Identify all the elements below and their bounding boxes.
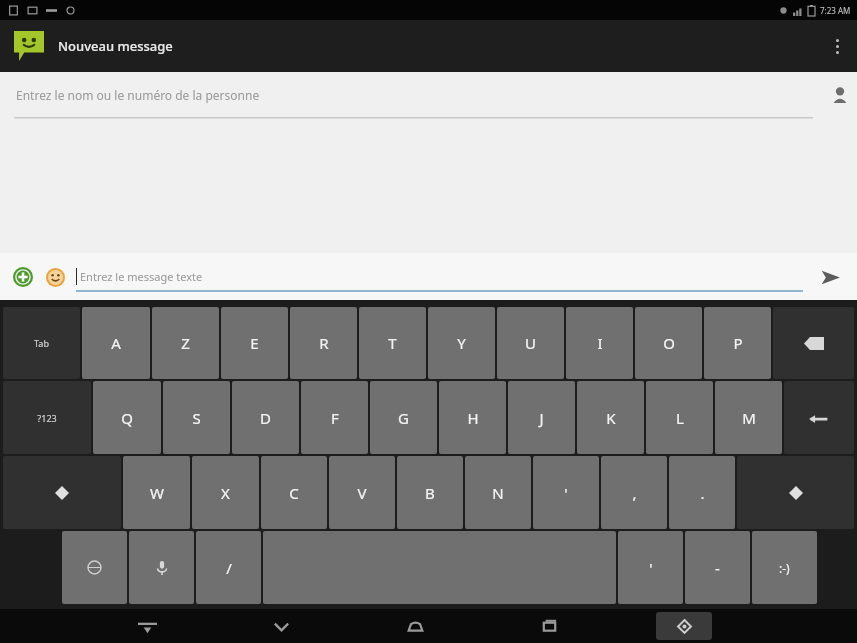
- staticText: H: [467, 408, 479, 428]
- button[interactable]: ': [533, 456, 599, 529]
- button[interactable]: Nouveau message: [14, 31, 183, 61]
- button[interactable]: -: [685, 531, 750, 604]
- staticText: P: [733, 333, 743, 353]
- button[interactable]: shift: [737, 456, 854, 529]
- button[interactable]: E: [221, 307, 288, 379]
- staticText: T: [388, 333, 397, 353]
- staticText: W: [150, 483, 164, 503]
- button[interactable]: F: [301, 381, 368, 454]
- button[interactable]: J: [508, 381, 575, 454]
- staticText: X: [221, 483, 230, 503]
- staticText: 7:23 AM: [820, 5, 851, 16]
- button[interactable]: More options: [817, 20, 857, 72]
- staticText: J: [539, 408, 544, 428]
- staticText: ': [564, 483, 568, 503]
- button[interactable]: Send: [813, 260, 847, 294]
- staticText: L: [676, 408, 684, 428]
- staticText: ': [649, 558, 653, 578]
- button[interactable]: T: [359, 307, 426, 379]
- button[interactable]: S: [163, 381, 230, 454]
- staticText: .: [700, 483, 705, 503]
- staticText: C: [289, 483, 299, 503]
- button[interactable]: globe: [62, 531, 127, 604]
- staticText: I: [597, 333, 603, 353]
- button[interactable]: C: [261, 456, 327, 529]
- button[interactable]: M: [715, 381, 782, 454]
- staticText: -: [715, 558, 720, 578]
- button[interactable]: Recent apps: [532, 609, 566, 643]
- staticText: /: [226, 558, 232, 578]
- staticText: B: [425, 483, 435, 503]
- staticText: O: [663, 333, 675, 353]
- button[interactable]: .: [669, 456, 735, 529]
- button[interactable]: X: [192, 456, 259, 529]
- button[interactable]: smiley: [752, 531, 817, 604]
- button[interactable]: A: [82, 307, 150, 379]
- button[interactable]: ?123: [3, 381, 91, 454]
- button[interactable]: K: [577, 381, 644, 454]
- button[interactable]: N: [465, 456, 531, 529]
- staticText: G: [398, 408, 409, 428]
- staticText: Tab: [34, 337, 49, 349]
- button[interactable]: D: [232, 381, 299, 454]
- button[interactable]: /: [196, 531, 261, 604]
- button[interactable]: R: [290, 307, 357, 379]
- button[interactable]: Q: [93, 381, 161, 454]
- button[interactable]: Entrez le message texte: [76, 253, 803, 300]
- staticText: V: [357, 483, 367, 503]
- staticText: U: [525, 333, 536, 353]
- staticText: E: [250, 333, 259, 353]
- button[interactable]: ,: [601, 456, 667, 529]
- button[interactable]: U: [497, 307, 564, 379]
- staticText: Z: [181, 333, 190, 353]
- staticText: Y: [457, 333, 466, 353]
- button[interactable]: B: [397, 456, 463, 529]
- staticText: ?123: [37, 412, 57, 424]
- button[interactable]: shift: [3, 456, 121, 529]
- button[interactable]: V: [329, 456, 395, 529]
- staticText: Entrez le message texte: [80, 269, 203, 284]
- staticText: R: [319, 333, 329, 353]
- button[interactable]: P: [704, 307, 771, 379]
- staticText: Entrez le nom ou le numéro de la personn…: [16, 87, 260, 103]
- button[interactable]: Tab: [3, 307, 80, 379]
- button[interactable]: bksp: [773, 307, 854, 379]
- staticText: S: [192, 408, 201, 428]
- staticText: K: [606, 408, 616, 428]
- button[interactable]: enter: [784, 381, 854, 454]
- staticText: ,: [632, 483, 637, 503]
- button[interactable]: ': [618, 531, 683, 604]
- button[interactable]: O: [635, 307, 702, 379]
- button[interactable]: Z: [152, 307, 219, 379]
- button[interactable]: Keyboard: [130, 609, 164, 643]
- button[interactable]: I: [566, 307, 633, 379]
- staticText: :-): [779, 560, 790, 576]
- staticText: D: [260, 408, 271, 428]
- button[interactable]: Y: [428, 307, 495, 379]
- staticText: N: [492, 483, 504, 503]
- button[interactable]: Attach: [10, 264, 36, 290]
- button[interactable]: L: [646, 381, 713, 454]
- button[interactable]: Hide keyboard: [264, 609, 298, 643]
- button[interactable]: Entrez le nom ou le numéro de la personn…: [0, 72, 857, 118]
- button[interactable]: Add contact: [823, 78, 857, 112]
- button[interactable]: Home: [398, 609, 432, 643]
- staticText: Nouveau message: [58, 37, 173, 55]
- button[interactable]: W: [123, 456, 190, 529]
- button[interactable]: G: [370, 381, 437, 454]
- staticText: A: [111, 333, 121, 353]
- staticText: M: [742, 408, 756, 428]
- staticText: F: [331, 408, 339, 428]
- staticText: Q: [121, 408, 133, 428]
- button[interactable]: H: [439, 381, 506, 454]
- button[interactable]: Emoji: [42, 264, 68, 290]
- button[interactable]: Menu: [656, 612, 712, 640]
- button[interactable]: mic: [129, 531, 194, 604]
